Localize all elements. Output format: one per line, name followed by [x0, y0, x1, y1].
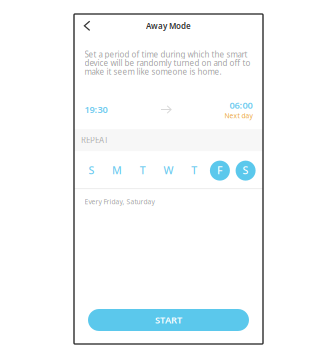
staticText: Next day: [224, 111, 252, 120]
button[interactable]: 06:00: [224, 99, 252, 120]
staticText: S: [243, 163, 249, 177]
button[interactable]: W: [156, 161, 181, 181]
button[interactable]: M: [104, 161, 130, 181]
staticText: W: [163, 163, 173, 177]
button[interactable]: 19:30: [84, 103, 107, 116]
staticText: Away Mode: [146, 21, 191, 31]
button[interactable]: START: [88, 309, 249, 331]
button[interactable]: Back: [77, 17, 97, 35]
button[interactable]: F: [207, 161, 233, 181]
staticText: F: [217, 163, 223, 177]
button[interactable]: T: [130, 161, 156, 181]
staticText: T: [191, 163, 197, 177]
staticText: T: [140, 163, 146, 177]
button[interactable]: T: [181, 161, 207, 181]
staticText: S: [88, 163, 94, 177]
button[interactable]: S: [233, 161, 258, 181]
button[interactable]: S: [79, 161, 104, 181]
staticText: Set a period of time during which the sm…: [84, 49, 250, 77]
staticText: REPEAT: [81, 135, 108, 145]
staticText: Every Friday, Saturday: [84, 197, 154, 206]
staticText: 06:00: [229, 99, 252, 111]
staticText: 19:30: [84, 103, 107, 116]
staticText: START: [155, 314, 182, 326]
staticText: M: [112, 163, 122, 177]
